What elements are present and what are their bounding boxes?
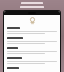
button[interactable] — [7, 25, 57, 35]
button[interactable] — [7, 35, 57, 45]
button[interactable] — [7, 65, 57, 72]
button[interactable] — [7, 45, 57, 55]
button[interactable] — [7, 55, 57, 65]
other: Brand logo — [29, 17, 36, 24]
